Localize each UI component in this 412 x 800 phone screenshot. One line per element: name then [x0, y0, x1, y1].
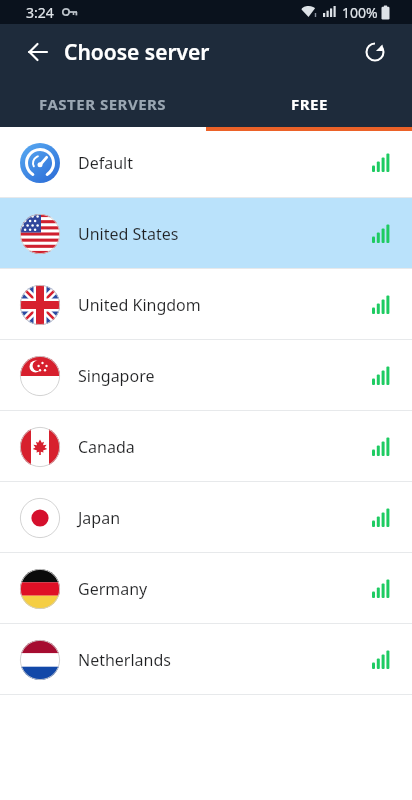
- staticText: Germany: [78, 578, 372, 600]
- button[interactable]: Singapore: [0, 340, 412, 411]
- button[interactable]: Canada: [0, 411, 412, 482]
- button[interactable]: [26, 40, 50, 64]
- staticText: Canada: [78, 436, 372, 458]
- staticText: 100%: [342, 3, 378, 22]
- staticText: FREE: [291, 94, 328, 114]
- staticText: United States: [78, 223, 372, 245]
- button[interactable]: [362, 39, 388, 65]
- button[interactable]: Germany: [0, 553, 412, 624]
- staticText: United Kingdom: [78, 294, 372, 316]
- staticText: 3:24: [26, 3, 54, 22]
- staticText: FASTER SERVERS: [39, 94, 167, 114]
- staticText: Choose server: [64, 38, 362, 67]
- button[interactable]: United States: [0, 198, 412, 269]
- staticText: Default: [78, 152, 372, 174]
- staticText: Singapore: [78, 365, 372, 387]
- button[interactable]: Default: [0, 127, 412, 198]
- button[interactable]: United Kingdom: [0, 269, 412, 340]
- button[interactable]: FREE: [206, 80, 412, 127]
- staticText: Japan: [78, 507, 372, 529]
- button[interactable]: Japan: [0, 482, 412, 553]
- button[interactable]: FASTER SERVERS: [0, 80, 206, 127]
- button[interactable]: Netherlands: [0, 624, 412, 695]
- staticText: Netherlands: [78, 649, 372, 671]
